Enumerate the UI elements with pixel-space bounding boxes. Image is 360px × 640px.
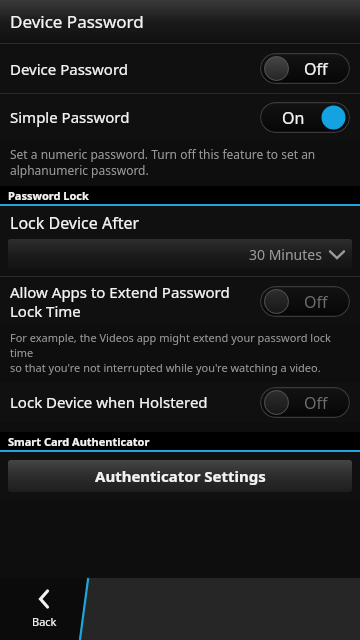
staticText: Off <box>304 291 328 313</box>
staticText: Lock Device After <box>10 212 140 234</box>
staticText: Back <box>32 614 57 629</box>
button[interactable]: Off <box>260 286 350 317</box>
button[interactable]: 30 Minutes <box>8 239 352 270</box>
staticText: Lock Device when Holstered <box>10 392 252 412</box>
staticText: Password Lock <box>8 188 89 203</box>
staticText: On <box>282 107 305 129</box>
staticText: Smart Card Authenticator <box>8 434 150 449</box>
staticText: Simple Password <box>10 107 252 127</box>
staticText: Device Password <box>10 59 252 79</box>
staticText: Set a numeric password. Turn off this fe… <box>10 146 316 178</box>
button[interactable]: Simple Password <box>0 94 360 140</box>
button[interactable]: On <box>260 102 350 133</box>
button[interactable]: Authenticator Settings <box>8 460 352 492</box>
button[interactable]: Device Password <box>0 44 360 93</box>
button[interactable]: Lock Device when Holstered <box>0 382 360 422</box>
button[interactable]: Back <box>0 578 88 640</box>
button[interactable]: Allow Apps to Extend Password Lock Time <box>0 277 360 325</box>
staticText: For example, the Videos app might extend… <box>10 330 350 375</box>
button[interactable]: Off <box>260 53 350 84</box>
staticText: 30 Minutes <box>249 245 322 264</box>
staticText: Authenticator Settings <box>95 466 266 486</box>
button[interactable]: Off <box>260 387 350 418</box>
staticText: Device Password <box>10 10 144 33</box>
staticText: Allow Apps to Extend Password Lock Time <box>10 282 252 321</box>
staticText: Off <box>304 392 328 414</box>
staticText: Off <box>304 58 328 80</box>
